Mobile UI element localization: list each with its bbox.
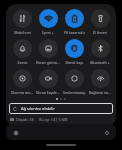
staticText: Pil tasarrufu [64,30,85,35]
button[interactable]: Oturma modu [10,69,34,95]
staticText: Bu ay: 141,5 MB [39,117,68,122]
staticText: Ekran görüntü. [36,60,60,65]
button[interactable]: Ekran kaydedi. [36,69,60,95]
staticText: Sessiz [17,60,28,65]
button[interactable]: Ağ sıkıntısı olabilir [9,103,113,114]
button[interactable]: Power [102,128,111,137]
staticText: Senkronizasy. [63,90,86,95]
staticText: Dönd. kap. [65,60,84,65]
button[interactable]: Sessiz [10,39,34,65]
staticText: Oturma modu [10,90,34,95]
button[interactable]: Bluetooth + [88,39,112,65]
button[interactable]: Pil tasarrufu [62,9,86,35]
button[interactable]: Ekran görüntü. [36,39,60,65]
staticText: Mobil veri [14,30,31,35]
staticText: Bağlantı nokta. [88,90,112,95]
button[interactable]: İçnet + [36,9,60,35]
staticText: Ekran kaydedi. [36,90,60,95]
button[interactable]: Settings [11,128,20,137]
staticText: İçnet + [42,30,54,35]
staticText: Bluetooth + [90,60,110,65]
button[interactable]: Mobil veri [10,9,34,35]
staticText: Ağ sıkıntısı olabilir [21,106,56,111]
staticText: El feneri [93,30,107,35]
button[interactable]: Senkronizasy. [62,69,86,95]
staticText: Düşük: 38 [16,117,34,122]
button[interactable]: Dönd. kap. [62,39,86,65]
button[interactable]: Bağlantı nokta. [88,69,112,95]
button[interactable]: El feneri [88,9,112,35]
